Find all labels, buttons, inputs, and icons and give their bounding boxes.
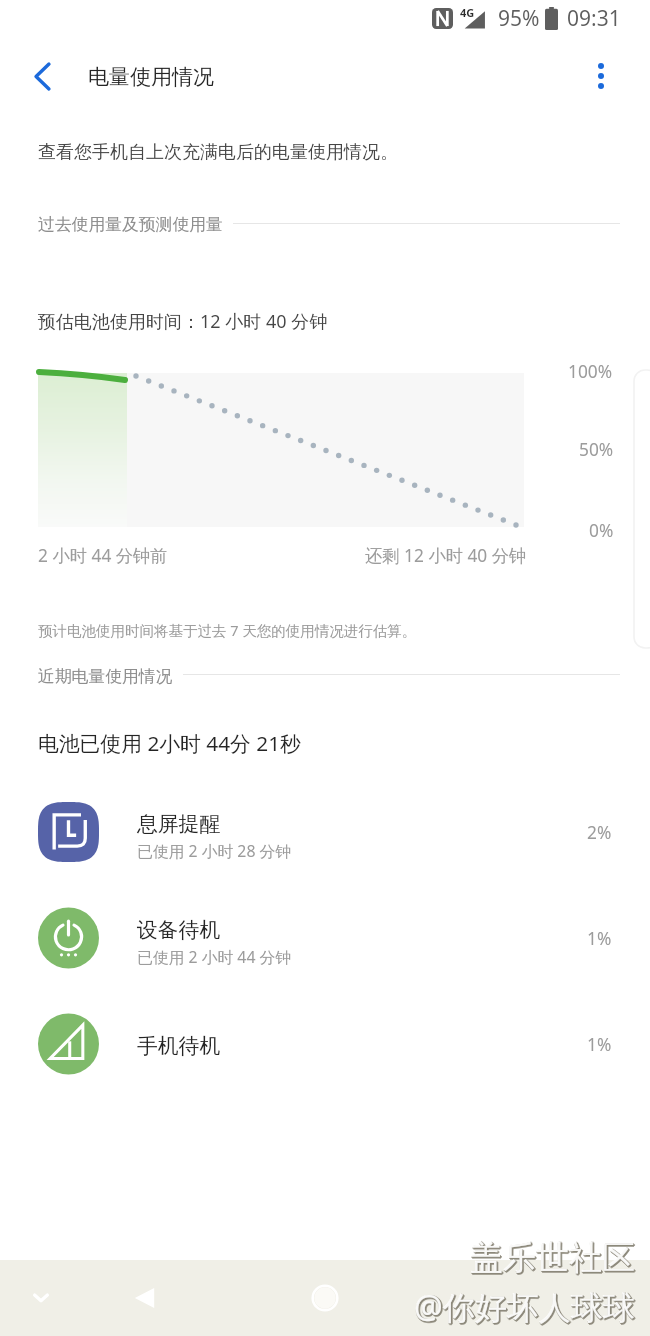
- staticText: @你好坏人球球: [415, 1285, 636, 1329]
- button[interactable]: Back: [110, 1260, 178, 1336]
- staticText: 还剩 12 小时 40 分钟: [365, 544, 527, 568]
- staticText: 查看您手机自上次充满电后的电量使用情况。: [38, 141, 398, 164]
- staticText: 电池已使用 2小时 44分 21秒: [38, 729, 301, 757]
- staticText: 息屏提醒: [137, 811, 221, 837]
- staticText: 预估电池使用时间：12 小时 40 分钟: [38, 309, 328, 334]
- staticText: 0%: [589, 519, 614, 543]
- staticText: 盖乐世社区: [470, 1237, 635, 1279]
- button[interactable]: 手机待机: [0, 1014, 650, 1074]
- staticText: 设备待机: [137, 917, 221, 943]
- staticText: 近期电量使用情况: [38, 666, 173, 687]
- staticText: 1%: [587, 1033, 612, 1057]
- staticText: 手机待机: [137, 1033, 221, 1059]
- button[interactable]: 息屏提醒: [0, 802, 650, 862]
- staticText: @你好坏人球球: [415, 1287, 636, 1331]
- button[interactable]: More options: [577, 52, 625, 100]
- staticText: 电量使用情况: [88, 64, 214, 90]
- button[interactable]: Home: [290, 1260, 360, 1336]
- staticText: 过去使用量及预测使用量: [38, 214, 223, 235]
- staticText: 已使用 2 小时 28 分钟: [137, 840, 292, 862]
- button[interactable]: 设备待机: [0, 908, 650, 968]
- staticText: @你好坏人球球: [414, 1285, 635, 1329]
- staticText: 预计电池使用时间将基于过去 7 天您的使用情况进行估算。: [38, 620, 417, 640]
- staticText: 100%: [568, 360, 613, 384]
- staticText: 盖乐世社区: [471, 1239, 636, 1281]
- staticText: 2 小时 44 分钟前: [38, 544, 168, 568]
- staticText: 盖乐世社区: [471, 1237, 636, 1279]
- staticText: 盖乐世社区: [470, 1238, 635, 1280]
- button[interactable]: Back: [18, 52, 66, 100]
- staticText: 4G: [460, 5, 475, 20]
- staticText: 2%: [587, 821, 612, 845]
- staticText: 已使用 2 小时 44 分钟: [137, 946, 292, 968]
- staticText: 盖乐世社区: [471, 1238, 636, 1280]
- staticText: 50%: [579, 438, 614, 462]
- staticText: 95%: [498, 4, 540, 33]
- staticText: @你好坏人球球: [416, 1286, 637, 1330]
- staticText: @你好坏人球球: [415, 1286, 636, 1330]
- staticText: 09:31: [567, 4, 621, 33]
- staticText: 盖乐世社区: [472, 1238, 637, 1280]
- staticText: @你好坏人球球: [414, 1286, 635, 1330]
- staticText: 1%: [587, 927, 612, 951]
